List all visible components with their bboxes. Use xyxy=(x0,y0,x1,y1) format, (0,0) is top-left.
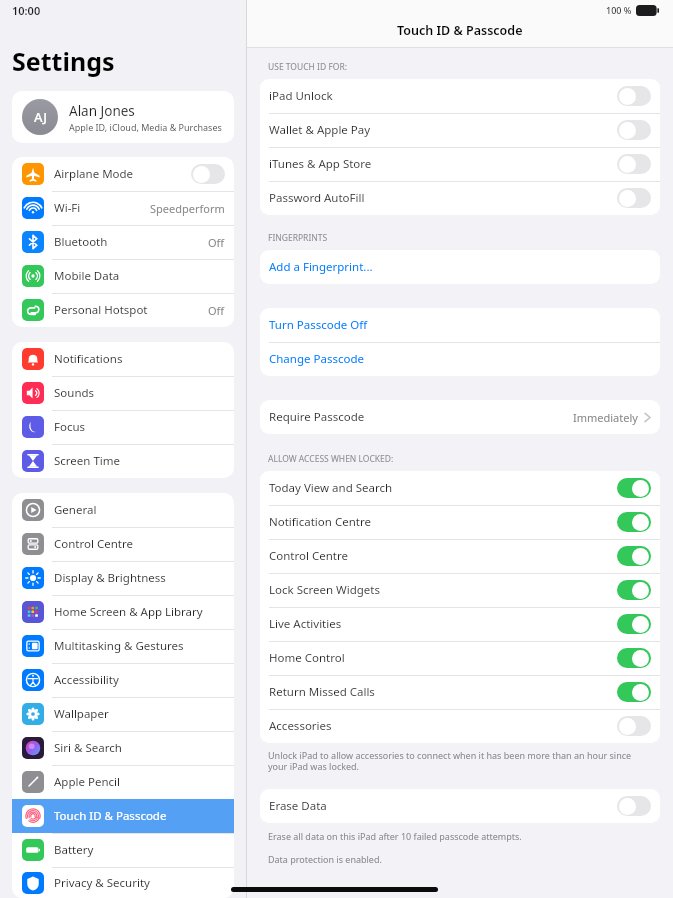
staticText: Multitasking & Gestures xyxy=(54,638,225,654)
button[interactable]: Touch ID & Passcode xyxy=(12,799,234,833)
button[interactable]: Wallet & Apple Pay xyxy=(260,113,660,147)
button[interactable]: On xyxy=(617,478,651,498)
staticText: Sounds xyxy=(54,385,225,401)
staticText: FINGERPRINTS xyxy=(268,232,328,244)
button[interactable]: Lock Screen Widgets xyxy=(260,573,660,607)
button[interactable]: Erase Data xyxy=(260,789,660,823)
button[interactable]: Display & Brightness xyxy=(12,561,234,595)
staticText: Notifications xyxy=(54,351,225,367)
button[interactable]: Off xyxy=(617,188,651,208)
staticText: Wallet & Apple Pay xyxy=(269,122,617,138)
staticText: Immediately xyxy=(573,410,638,425)
button[interactable]: Mobile Data xyxy=(12,259,234,293)
staticText: USE TOUCH ID FOR: xyxy=(268,61,348,73)
button[interactable]: Focus xyxy=(12,410,234,444)
staticText: Control Centre xyxy=(54,536,225,552)
staticText: Screen Time xyxy=(54,453,225,469)
staticText: AJ xyxy=(34,108,47,126)
button[interactable]: Return Missed Calls xyxy=(260,675,660,709)
staticText: Data protection is enabled. xyxy=(268,853,382,865)
staticText: Personal Hotspot xyxy=(54,302,208,318)
staticText: Accessories xyxy=(269,718,617,734)
button[interactable]: Bluetooth xyxy=(12,225,234,259)
button[interactable]: On xyxy=(617,580,651,600)
staticText: Notification Centre xyxy=(269,514,617,530)
staticText: Privacy & Security xyxy=(54,875,225,891)
button[interactable]: Multitasking & Gestures xyxy=(12,629,234,663)
staticText: Erase all data on this iPad after 10 fai… xyxy=(268,830,522,842)
staticText: Password AutoFill xyxy=(269,190,617,206)
staticText: Live Activities xyxy=(269,616,617,632)
staticText: Touch ID & Passcode xyxy=(54,808,225,824)
staticText: Off xyxy=(208,303,225,318)
staticText: Settings xyxy=(12,44,115,78)
button[interactable]: Apple Pencil xyxy=(12,765,234,799)
staticText: Alan Jones xyxy=(69,102,135,120)
button[interactable]: Accessibility xyxy=(12,663,234,697)
button[interactable]: Change Passcode xyxy=(260,342,660,376)
button[interactable]: Notifications xyxy=(12,342,234,376)
button[interactable]: iPad Unlock xyxy=(260,79,660,113)
button[interactable]: On xyxy=(617,648,651,668)
button[interactable]: General xyxy=(12,493,234,527)
button[interactable]: Home Screen & App Library xyxy=(12,595,234,629)
button[interactable]: Accessories xyxy=(260,709,660,743)
button[interactable]: Siri & Search xyxy=(12,731,234,765)
button[interactable]: Sounds xyxy=(12,376,234,410)
button[interactable]: Off xyxy=(617,86,651,106)
staticText: Display & Brightness xyxy=(54,570,225,586)
button[interactable]: Off xyxy=(191,164,225,184)
staticText: Accessibility xyxy=(54,672,225,688)
button[interactable]: Privacy & Security xyxy=(12,867,234,898)
staticText: Unlock iPad to allow accessories to conn… xyxy=(268,749,636,773)
button[interactable]: On xyxy=(617,512,651,532)
staticText: Control Centre xyxy=(269,548,617,564)
button[interactable]: Screen Time xyxy=(12,444,234,478)
staticText: Lock Screen Widgets xyxy=(269,582,617,598)
button[interactable]: On xyxy=(617,614,651,634)
button[interactable]: Control Centre xyxy=(12,527,234,561)
button[interactable]: Live Activities xyxy=(260,607,660,641)
button[interactable]: Wallpaper xyxy=(12,697,234,731)
button[interactable]: Add a Fingerprint... xyxy=(260,250,660,284)
staticText: Touch ID & Passcode xyxy=(397,22,523,39)
staticText: ALLOW ACCESS WHEN LOCKED: xyxy=(268,453,394,465)
staticText: General xyxy=(54,502,225,518)
button[interactable]: Turn Passcode Off xyxy=(260,308,660,342)
staticText: 100 % xyxy=(606,4,632,16)
button[interactable]: Off xyxy=(617,154,651,174)
button[interactable]: Password AutoFill xyxy=(260,181,660,215)
button[interactable]: Require Passcode xyxy=(260,400,660,434)
staticText: Wallpaper xyxy=(54,706,225,722)
button[interactable]: Notification Centre xyxy=(260,505,660,539)
staticText: Bluetooth xyxy=(54,234,208,250)
staticText: Battery xyxy=(54,842,225,858)
button[interactable]: AJ xyxy=(12,91,234,143)
staticText: Siri & Search xyxy=(54,740,225,756)
button[interactable]: On xyxy=(617,546,651,566)
button[interactable]: Home Control xyxy=(260,641,660,675)
button[interactable]: Off xyxy=(617,716,651,736)
staticText: iTunes & App Store xyxy=(269,156,617,172)
button[interactable]: Wi-Fi xyxy=(12,191,234,225)
button[interactable]: Off xyxy=(617,796,651,816)
button[interactable]: On xyxy=(617,682,651,702)
staticText: Wi-Fi xyxy=(54,200,150,216)
staticText: Today View and Search xyxy=(269,480,617,496)
button[interactable]: Off xyxy=(617,120,651,140)
staticText: Home Screen & App Library xyxy=(54,604,225,620)
staticText: 10:00 xyxy=(12,3,41,18)
button[interactable]: Personal Hotspot xyxy=(12,293,234,327)
staticText: Airplane Mode xyxy=(54,166,191,182)
staticText: Speedperform xyxy=(150,201,225,216)
staticText: Apple Pencil xyxy=(54,774,225,790)
staticText: Return Missed Calls xyxy=(269,684,617,700)
button[interactable]: Battery xyxy=(12,833,234,867)
button[interactable]: Airplane Mode xyxy=(12,157,234,191)
staticText: Off xyxy=(208,235,225,250)
button[interactable]: Today View and Search xyxy=(260,471,660,505)
button[interactable]: Control Centre xyxy=(260,539,660,573)
staticText: Home Control xyxy=(269,650,617,666)
staticText: Erase Data xyxy=(269,798,617,814)
button[interactable]: iTunes & App Store xyxy=(260,147,660,181)
